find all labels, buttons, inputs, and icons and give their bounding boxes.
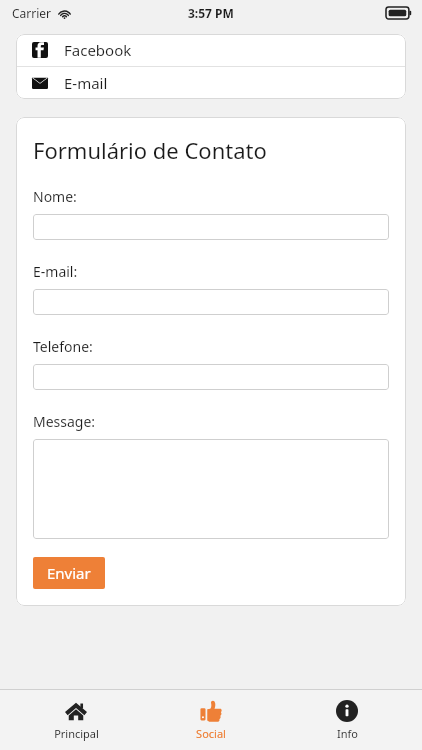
staticText: Telefone: [33, 337, 93, 356]
staticText: E-mail [64, 73, 108, 93]
button[interactable]: Principal [16, 694, 136, 747]
staticText: Nome: [33, 187, 77, 206]
staticText: Formulário de Contato [33, 135, 267, 165]
button[interactable]: Enviar [33, 557, 105, 589]
staticText: 3:57 PM [188, 5, 234, 21]
button[interactable] [33, 364, 389, 390]
staticText: Enviar [47, 563, 91, 583]
staticText: Facebook [64, 40, 132, 60]
button[interactable]: Social [151, 694, 271, 747]
button[interactable]: Facebook [16, 34, 406, 66]
staticText: Message: [33, 412, 96, 431]
button[interactable] [33, 439, 389, 539]
staticText: Info [337, 726, 358, 741]
staticText: Principal [54, 726, 99, 741]
button[interactable] [33, 214, 389, 240]
button[interactable] [33, 289, 389, 315]
button[interactable]: E-mail [16, 67, 406, 99]
staticText: Social [196, 726, 226, 741]
button[interactable]: Info [287, 694, 407, 747]
staticText: E-mail: [33, 262, 78, 281]
staticText: Carrier [12, 5, 52, 21]
